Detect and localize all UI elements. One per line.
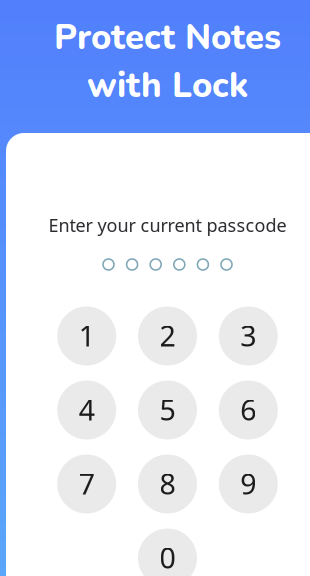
button[interactable]: 2: [138, 306, 197, 365]
staticText: Protect Notes: [54, 14, 281, 61]
staticText: 2: [159, 316, 175, 355]
button[interactable]: 6: [219, 380, 278, 439]
button[interactable]: 3: [219, 306, 278, 365]
button[interactable]: 9: [219, 454, 278, 513]
staticText: 7: [79, 464, 95, 503]
staticText: 1: [79, 316, 95, 355]
button[interactable]: 5: [138, 380, 197, 439]
button[interactable]: 4: [57, 380, 116, 439]
staticText: 0: [159, 538, 175, 576]
staticText: 3: [240, 316, 256, 355]
staticText: Enter your current passcode: [48, 213, 286, 237]
staticText: 8: [159, 464, 175, 503]
button[interactable]: 0: [138, 528, 197, 576]
button[interactable]: 8: [138, 454, 197, 513]
button[interactable]: 7: [57, 454, 116, 513]
staticText: 9: [240, 464, 256, 503]
button[interactable]: 1: [57, 306, 116, 365]
staticText: with Lock: [87, 62, 248, 109]
staticText: 5: [159, 390, 175, 429]
staticText: 4: [79, 390, 95, 429]
staticText: 6: [240, 390, 256, 429]
